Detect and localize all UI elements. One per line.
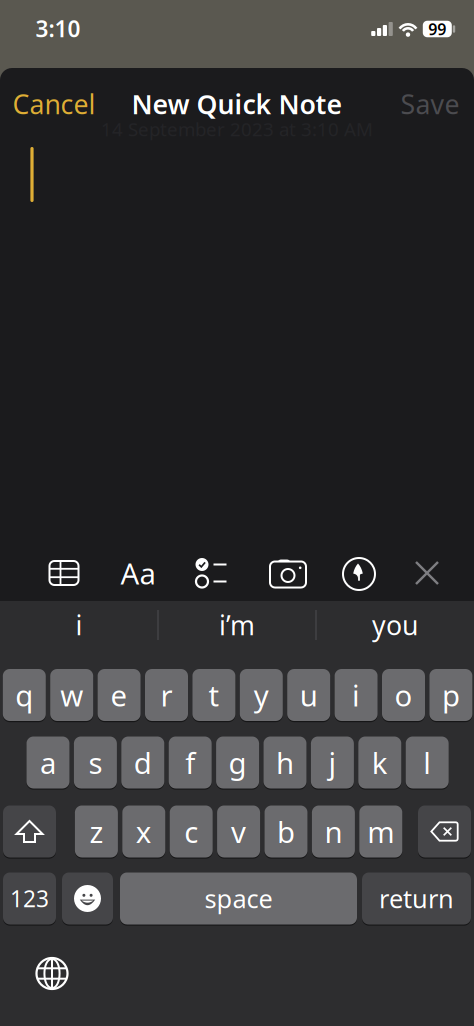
button[interactable]: 123 bbox=[3, 872, 56, 925]
staticText: space bbox=[204, 882, 272, 915]
button[interactable]: q bbox=[3, 668, 46, 721]
button[interactable]: g bbox=[216, 736, 259, 789]
staticText: q bbox=[15, 675, 33, 714]
button[interactable]: v bbox=[217, 805, 260, 858]
staticText: New Quick Note bbox=[131, 86, 342, 122]
staticText: 3:10 bbox=[35, 13, 80, 43]
button[interactable]: Save bbox=[398, 84, 462, 124]
button[interactable]: Insert photo bbox=[264, 553, 312, 597]
button[interactable]: j bbox=[311, 736, 354, 789]
button[interactable]: x bbox=[122, 805, 165, 858]
staticText: y bbox=[254, 675, 269, 714]
button[interactable]: w bbox=[50, 668, 93, 721]
button[interactable]: return bbox=[362, 872, 471, 925]
staticText: i bbox=[75, 607, 82, 643]
button[interactable]: e bbox=[98, 668, 141, 721]
staticText: f bbox=[185, 743, 195, 782]
button[interactable]: a bbox=[26, 736, 69, 789]
button[interactable]: Markup bbox=[335, 552, 383, 596]
button[interactable]: Shift bbox=[3, 805, 56, 858]
staticText: Save bbox=[400, 86, 459, 122]
staticText: p bbox=[442, 675, 460, 714]
staticText: s bbox=[88, 743, 102, 782]
button[interactable]: s bbox=[74, 736, 117, 789]
button[interactable]: Text format bbox=[114, 551, 162, 595]
button[interactable]: you bbox=[325, 603, 465, 647]
button[interactable]: h bbox=[263, 736, 306, 789]
button[interactable]: Emoji bbox=[62, 872, 113, 925]
button[interactable]: Next keyboard bbox=[30, 951, 74, 995]
button[interactable]: b bbox=[264, 805, 307, 858]
staticText: Aa bbox=[120, 553, 155, 592]
staticText: d bbox=[134, 743, 152, 782]
button[interactable]: i bbox=[335, 668, 378, 721]
staticText: i’m bbox=[219, 607, 255, 643]
button[interactable]: m bbox=[359, 805, 402, 858]
staticText: 123 bbox=[10, 883, 49, 913]
staticText: r bbox=[160, 675, 172, 714]
button[interactable]: Insert table bbox=[40, 551, 88, 595]
button[interactable]: c bbox=[170, 805, 213, 858]
button[interactable]: l bbox=[406, 736, 449, 789]
staticText: v bbox=[231, 812, 246, 851]
staticText: 99 bbox=[428, 18, 446, 40]
staticText: return bbox=[379, 882, 454, 915]
staticText: b bbox=[277, 812, 295, 851]
button[interactable]: y bbox=[240, 668, 283, 721]
button[interactable]: d bbox=[121, 736, 164, 789]
staticText: w bbox=[60, 675, 83, 714]
staticText: e bbox=[111, 675, 128, 714]
button[interactable]: i’m bbox=[167, 603, 307, 647]
staticText: l bbox=[423, 743, 431, 782]
staticText: z bbox=[89, 812, 103, 851]
staticText: you bbox=[372, 607, 418, 643]
staticText: 14 September 2023 at 3:10 AM bbox=[101, 117, 373, 141]
staticText: m bbox=[367, 812, 394, 851]
button[interactable]: f bbox=[169, 736, 212, 789]
staticText: c bbox=[184, 812, 198, 851]
button[interactable]: t bbox=[192, 668, 235, 721]
button[interactable]: Cancel bbox=[0, 84, 109, 124]
staticText: o bbox=[394, 675, 412, 714]
button[interactable]: o bbox=[382, 668, 425, 721]
button[interactable]: u bbox=[287, 668, 330, 721]
staticText: x bbox=[136, 812, 152, 851]
button[interactable]: k bbox=[358, 736, 401, 789]
staticText: g bbox=[229, 743, 247, 782]
staticText: k bbox=[372, 743, 388, 782]
button[interactable]: r bbox=[145, 668, 188, 721]
button[interactable]: z bbox=[75, 805, 118, 858]
staticText: t bbox=[208, 675, 219, 714]
button[interactable]: Dismiss toolbar bbox=[405, 551, 449, 595]
staticText: i bbox=[352, 675, 360, 714]
button[interactable]: space bbox=[120, 872, 357, 925]
staticText: n bbox=[324, 812, 342, 851]
staticText: a bbox=[40, 743, 56, 782]
staticText: h bbox=[276, 743, 294, 782]
staticText: u bbox=[300, 675, 318, 714]
staticText: Cancel bbox=[12, 86, 95, 122]
button[interactable]: p bbox=[429, 668, 472, 721]
button[interactable]: Delete bbox=[418, 805, 471, 858]
button[interactable]: n bbox=[312, 805, 355, 858]
staticText: j bbox=[328, 743, 336, 782]
button[interactable]: i bbox=[9, 603, 149, 647]
button[interactable]: Checklist bbox=[187, 551, 235, 595]
